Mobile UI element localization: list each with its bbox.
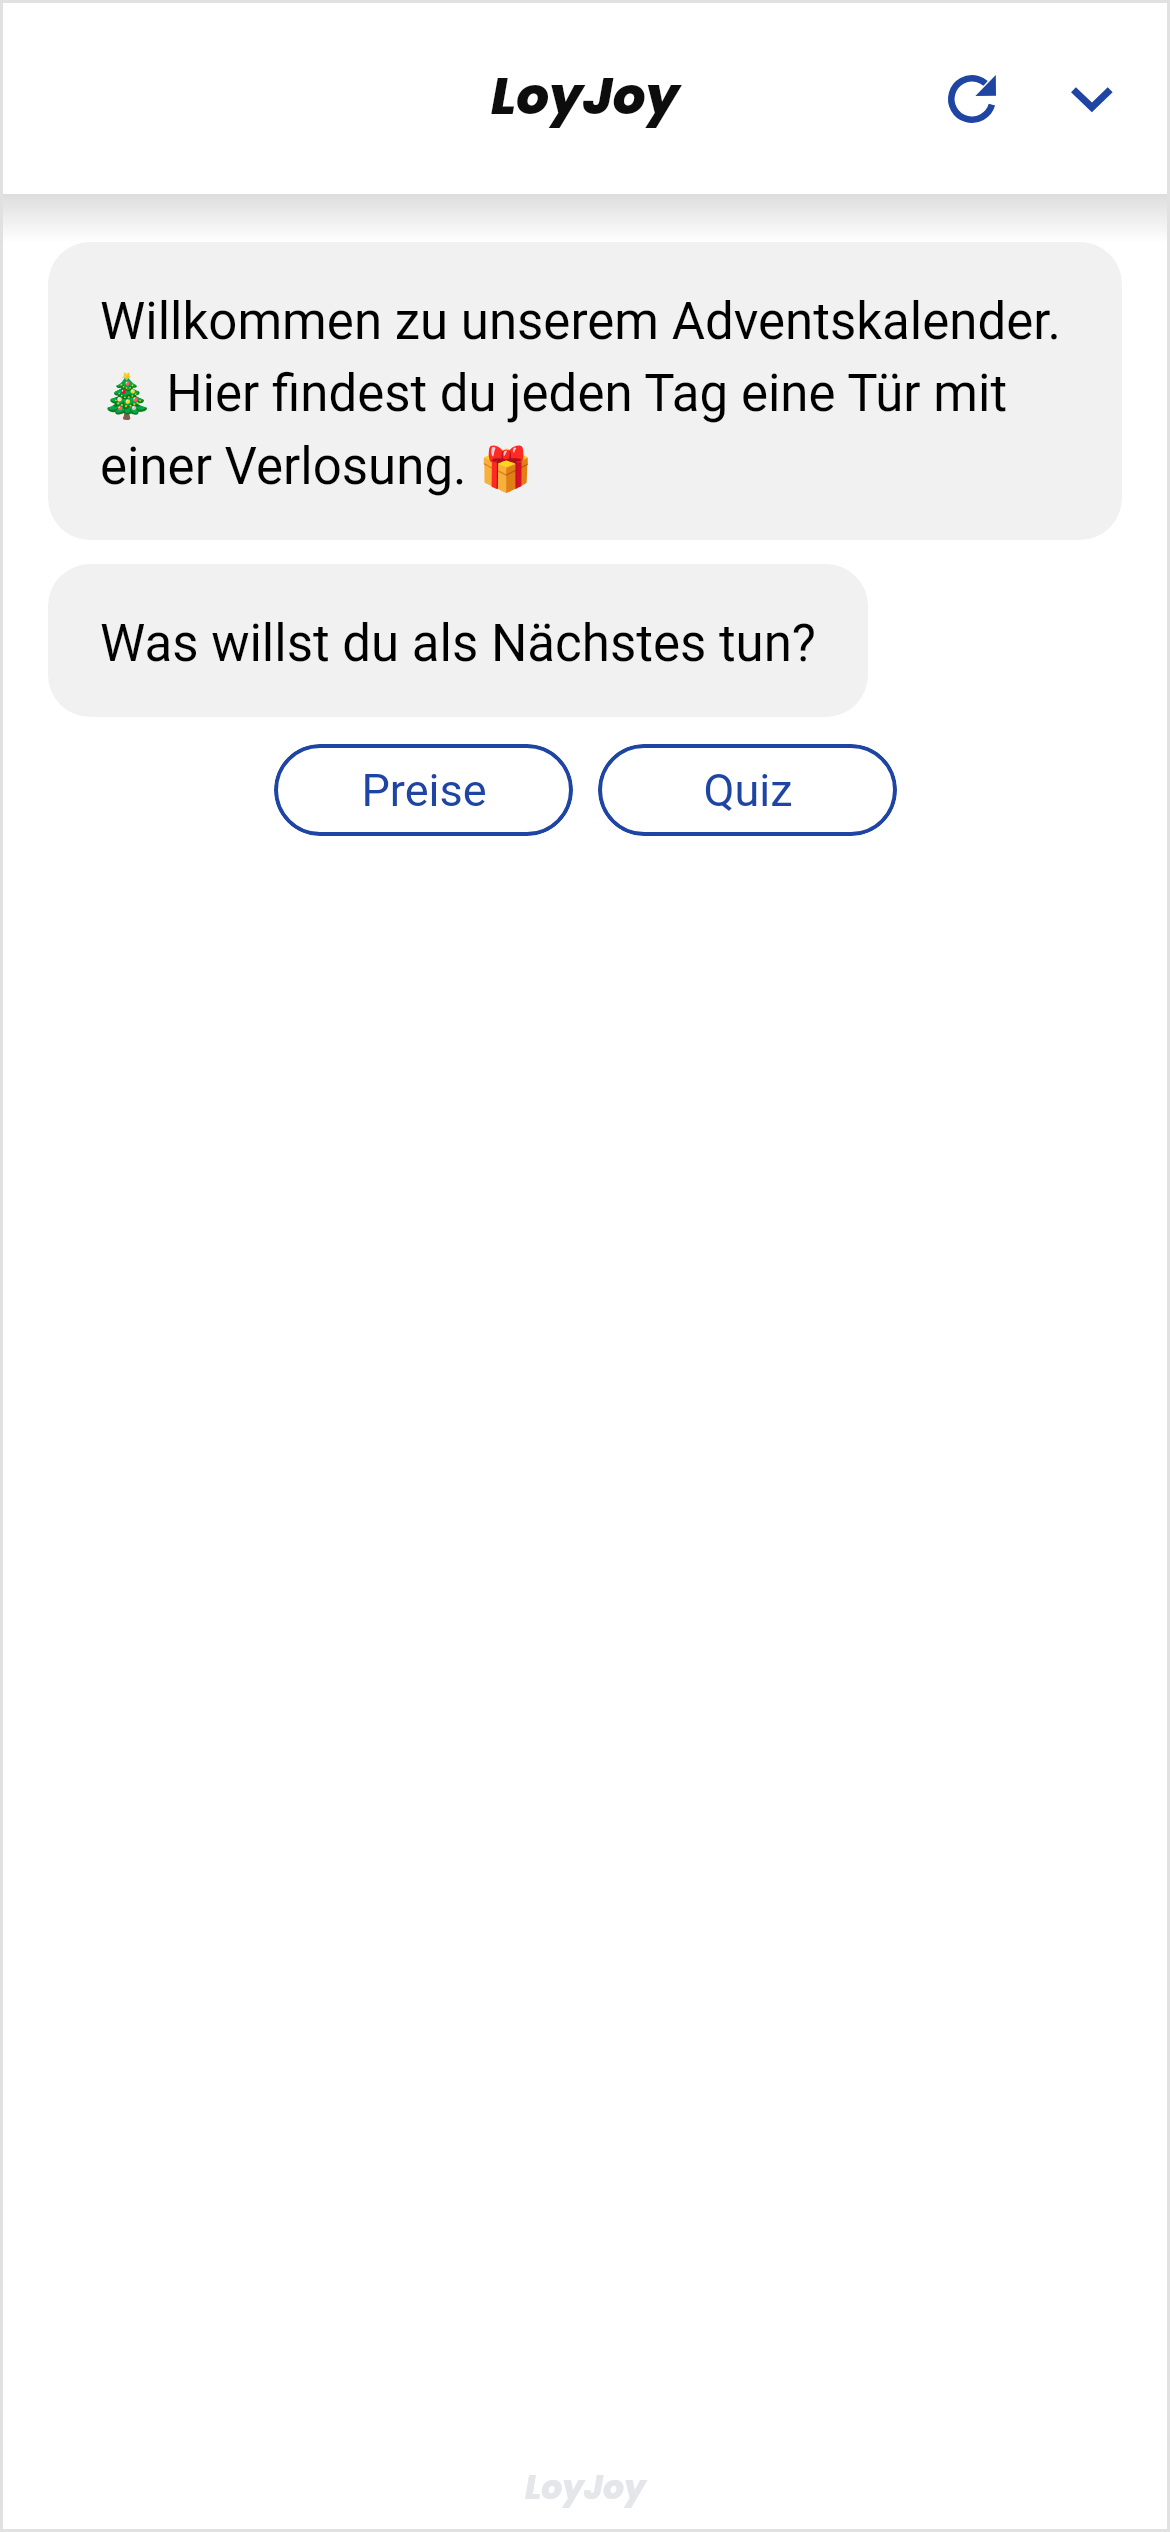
- staticText: Quiz: [703, 764, 793, 817]
- button[interactable]: Quiz: [598, 744, 897, 836]
- staticText: LoyJoy: [525, 2464, 646, 2510]
- button[interactable]: Restart conversation: [924, 51, 1020, 147]
- staticText: Willkommen zu unserem Adventskalender. 🎄…: [100, 292, 1076, 497]
- button[interactable]: Minimize chat: [1044, 51, 1140, 147]
- staticText: Was willst du als Nächstes tun?: [100, 614, 816, 674]
- button[interactable]: Preise: [274, 744, 573, 836]
- staticText: Preise: [361, 764, 487, 817]
- staticText: LoyJoy: [491, 60, 680, 132]
